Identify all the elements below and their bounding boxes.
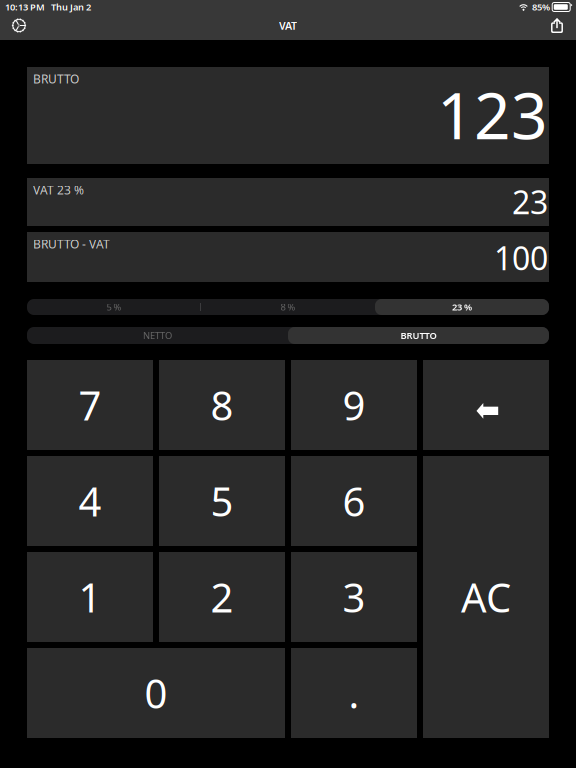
staticText: 5 % — [106, 301, 121, 313]
staticText: BRUTTO - VAT — [33, 236, 110, 252]
button[interactable]: Settings — [0, 12, 38, 38]
staticText: 0 — [144, 666, 167, 719]
staticText: 8 — [210, 378, 233, 431]
button[interactable]: 9 — [291, 360, 417, 450]
staticText: 85% — [532, 1, 550, 13]
button[interactable]: . — [291, 648, 417, 738]
staticText: Thu Jan 2 — [45, 1, 91, 13]
button[interactable]: 4 — [27, 456, 153, 546]
staticText: 6 — [342, 474, 365, 527]
button[interactable]: 8 — [159, 360, 285, 450]
staticText: 5 — [210, 474, 233, 527]
staticText: 8 % — [280, 301, 295, 313]
button[interactable]: BRUTTO — [288, 327, 549, 344]
button[interactable]: Share — [538, 12, 576, 38]
staticText: 1 — [78, 570, 101, 623]
button[interactable]: 2 — [159, 552, 285, 642]
button[interactable]: 7 — [27, 360, 153, 450]
button[interactable]: NETTO — [27, 327, 288, 344]
staticText: . — [348, 666, 359, 719]
staticText: AC — [461, 570, 511, 623]
staticText: VAT 23 % — [33, 182, 84, 198]
staticText: 100 — [494, 236, 548, 279]
staticText: NETTO — [143, 329, 172, 342]
button[interactable]: 5 % — [27, 299, 201, 315]
staticText: 4 — [78, 474, 101, 527]
staticText: 23 % — [452, 301, 472, 313]
staticText: BRUTTO — [33, 71, 79, 87]
staticText: 10:13 PM — [5, 1, 45, 13]
staticText: 3 — [342, 570, 365, 623]
button[interactable]: 0 — [27, 648, 285, 738]
button[interactable]: 6 — [291, 456, 417, 546]
button[interactable]: 23 % — [375, 299, 549, 315]
staticText: 23 — [512, 180, 548, 223]
staticText: BRUTTO — [400, 329, 436, 342]
button[interactable]: AC — [423, 456, 549, 738]
staticText: VAT — [279, 18, 297, 33]
staticText: 123 — [437, 72, 548, 157]
staticText: 2 — [210, 570, 233, 623]
staticText: 9 — [342, 378, 365, 431]
button[interactable]: Backspace — [423, 360, 549, 450]
button[interactable]: 8 % — [201, 299, 375, 315]
button[interactable]: 3 — [291, 552, 417, 642]
button[interactable]: 5 — [159, 456, 285, 546]
staticText: 7 — [78, 378, 101, 431]
button[interactable]: 1 — [27, 552, 153, 642]
